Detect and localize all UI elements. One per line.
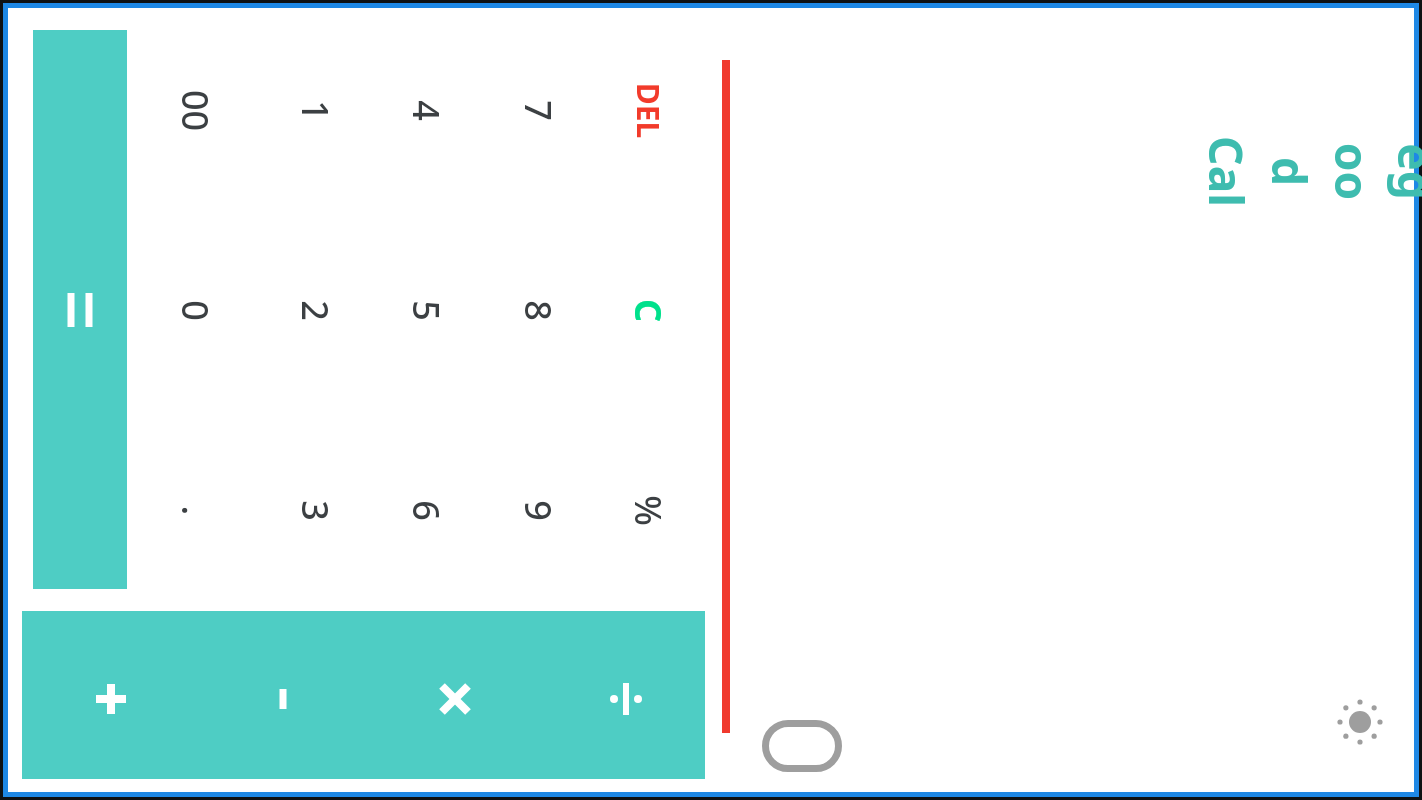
button[interactable]: Plus (51, 629, 171, 769)
button[interactable]: 0 (140, 215, 250, 405)
staticText: DEL (627, 82, 668, 138)
button[interactable]: 2 (260, 215, 370, 405)
button[interactable]: Home (762, 720, 842, 772)
staticText: 7 (514, 100, 563, 121)
button[interactable]: Equals (33, 30, 127, 589)
staticText: 4 (402, 100, 451, 121)
button[interactable]: Minus (223, 629, 343, 769)
button[interactable]: 8 (483, 215, 593, 405)
button[interactable]: DEL (593, 15, 703, 205)
staticText: . (170, 505, 219, 515)
staticText: C (623, 298, 672, 322)
button[interactable]: 9 (483, 415, 593, 605)
staticText: 00 (170, 89, 219, 131)
button[interactable]: 6 (371, 415, 481, 605)
staticText: 2 (291, 300, 340, 321)
button[interactable]: 7 (483, 15, 593, 205)
button[interactable]: 3 (260, 415, 370, 605)
button[interactable]: Brightness (1320, 682, 1400, 762)
button[interactable]: . (140, 415, 250, 605)
button[interactable]: 1 (260, 15, 370, 205)
button[interactable]: Divide (566, 629, 686, 769)
button[interactable]: 5 (371, 215, 481, 405)
staticText: 3 (291, 500, 340, 521)
staticText: 1 (291, 100, 340, 121)
button[interactable]: % (593, 415, 703, 605)
staticText: 5 (402, 300, 451, 321)
staticText: % (624, 495, 673, 526)
button[interactable]: Multiply (395, 629, 515, 769)
staticText: 6 (402, 500, 451, 521)
staticText: 9 (514, 500, 563, 521)
button[interactable]: 00 (140, 15, 250, 205)
staticText: Onegood Cal (1194, 131, 1422, 211)
staticText: 8 (514, 300, 563, 321)
other: Onegood Cal (1312, 6, 1392, 336)
button[interactable]: C (593, 215, 703, 405)
staticText: 0 (171, 300, 220, 321)
button[interactable]: 4 (371, 15, 481, 205)
